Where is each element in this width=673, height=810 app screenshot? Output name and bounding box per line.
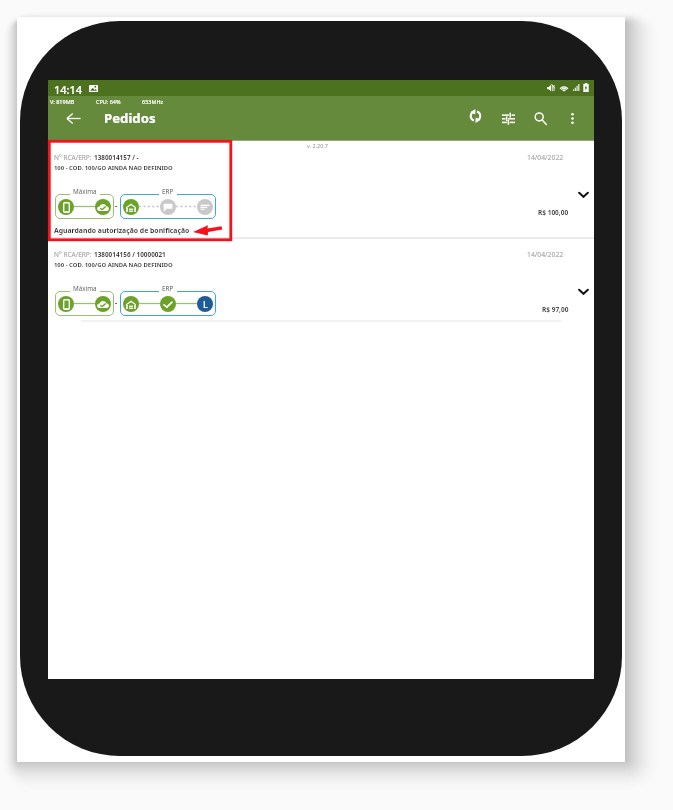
button[interactable]: More options [559, 105, 585, 131]
staticText: N° RCA/ERP: [54, 153, 94, 162]
staticText: Máxima [73, 187, 97, 196]
button[interactable]: Expand [572, 280, 594, 302]
button[interactable]: Search [527, 105, 553, 131]
staticText: Máxima [73, 284, 97, 293]
staticText: 653MHz [142, 98, 164, 105]
staticText: ERP [162, 284, 174, 293]
staticText: 100 - COD. 100/GO AINDA NAO DEFINIDO [54, 164, 173, 172]
staticText: R$ 100,00 [538, 208, 569, 217]
button[interactable]: N° RCA/ERP: [48, 238, 594, 322]
staticText: R$ 97,00 [542, 305, 569, 314]
staticText: - [115, 298, 118, 308]
staticText: N° RCA/ERP: [54, 250, 94, 259]
button[interactable]: Expand [572, 183, 594, 205]
staticText: 100 - COD. 100/GO AINDA NAO DEFINIDO [54, 261, 173, 269]
staticText: ERP [162, 187, 174, 196]
staticText: Aguardando autorização de bonificação [54, 226, 190, 235]
button[interactable]: Back [59, 104, 87, 132]
staticText: Pedidos [104, 109, 156, 127]
button[interactable]: N° RCA/ERP: [48, 141, 594, 238]
staticText: 14:14 [54, 82, 83, 97]
staticText: CPU: 64% [96, 98, 121, 105]
staticText: v. 2.20.7 [307, 142, 329, 149]
button[interactable]: Sync [462, 103, 488, 129]
staticText: 14/04/2022 [527, 250, 564, 259]
staticText: 1380014157 / - [94, 153, 139, 162]
staticText: L [203, 298, 208, 310]
staticText: V: 819MB [50, 98, 75, 105]
staticText: 1380014156 / 10000021 [94, 250, 166, 259]
staticText: 14/04/2022 [527, 153, 564, 162]
button[interactable]: Filter [495, 105, 521, 131]
staticText: - [115, 201, 118, 211]
